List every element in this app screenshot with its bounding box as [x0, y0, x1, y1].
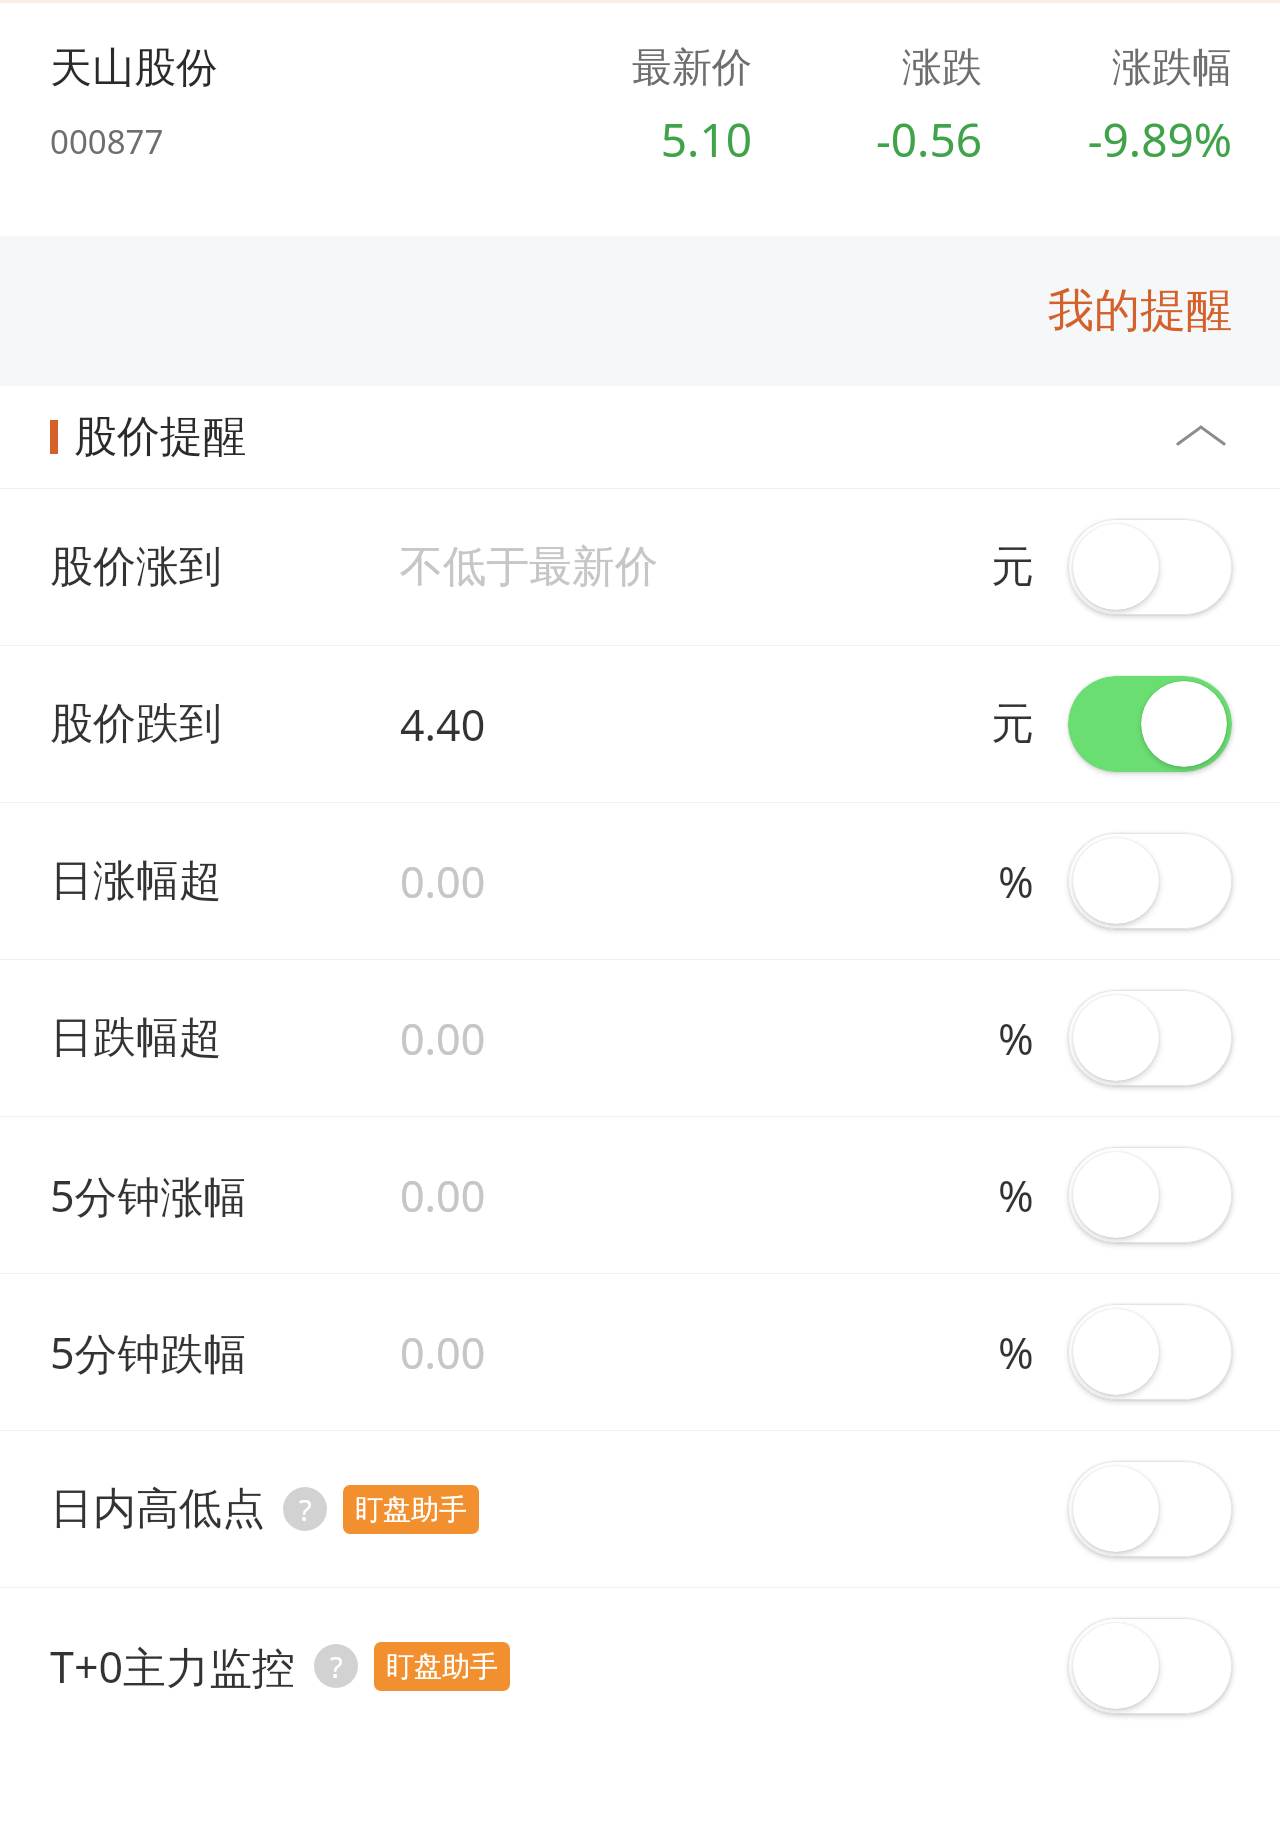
- staticText: -0.56: [875, 108, 982, 171]
- button[interactable]: 日内高低点: [0, 1431, 1280, 1587]
- staticText: %: [998, 1166, 1034, 1225]
- button[interactable]: 股价跌到: [0, 646, 1280, 802]
- staticText: 股价跌到: [50, 697, 400, 751]
- staticText: ?: [299, 1490, 312, 1529]
- button[interactable]: Help: [314, 1644, 358, 1688]
- staticText: 4.40: [400, 695, 991, 754]
- button[interactable]: 股价提醒: [0, 386, 1280, 488]
- staticText: 5分钟涨幅: [50, 1166, 400, 1225]
- button[interactable]: Alert disabled: [1064, 514, 1236, 620]
- button[interactable]: 股价涨到: [0, 489, 1280, 645]
- staticText: 0.00: [400, 1323, 998, 1382]
- staticText: 盯盘助手: [386, 1649, 498, 1684]
- staticText: T+0主力监控: [50, 1637, 296, 1696]
- button[interactable]: Alert enabled: [1064, 671, 1236, 777]
- staticText: 涨跌幅: [1112, 42, 1232, 92]
- staticText: 0.00: [400, 852, 998, 911]
- button[interactable]: Help: [283, 1487, 327, 1531]
- button[interactable]: 我的提醒: [1000, 258, 1280, 364]
- staticText: 我的提醒: [1048, 282, 1232, 340]
- staticText: 日跌幅超: [50, 1011, 400, 1065]
- button[interactable]: 日跌幅超: [0, 960, 1280, 1116]
- staticText: 000877: [50, 119, 164, 164]
- staticText: 不低于最新价: [400, 540, 991, 594]
- staticText: 天山股份: [50, 42, 218, 95]
- button[interactable]: T+0主力监控: [0, 1588, 1280, 1744]
- staticText: 股价涨到: [50, 540, 400, 594]
- staticText: %: [998, 1009, 1034, 1068]
- button[interactable]: 5分钟涨幅: [0, 1117, 1280, 1273]
- staticText: 涨跌: [902, 42, 982, 92]
- staticText: 0.00: [400, 1009, 998, 1068]
- button[interactable]: Alert disabled: [1064, 1142, 1236, 1248]
- staticText: 元: [991, 697, 1034, 751]
- staticText: 0.00: [400, 1166, 998, 1225]
- staticText: %: [998, 1323, 1034, 1382]
- staticText: 5分钟跌幅: [50, 1323, 400, 1382]
- button[interactable]: Alert disabled: [1064, 1299, 1236, 1405]
- staticText: 元: [991, 540, 1034, 594]
- staticText: %: [998, 852, 1034, 911]
- button[interactable]: Alert disabled: [1064, 985, 1236, 1091]
- staticText: 最新价: [632, 42, 752, 92]
- button[interactable]: 日涨幅超: [0, 803, 1280, 959]
- staticText: 日涨幅超: [50, 854, 400, 908]
- staticText: 股价提醒: [74, 410, 246, 464]
- button[interactable]: 5分钟跌幅: [0, 1274, 1280, 1430]
- staticText: -9.89%: [1087, 108, 1232, 171]
- staticText: ?: [330, 1647, 343, 1686]
- button[interactable]: Alert disabled: [1064, 1613, 1236, 1719]
- other: Collapse section: [1172, 408, 1230, 466]
- button[interactable]: Alert disabled: [1064, 1456, 1236, 1562]
- staticText: 盯盘助手: [355, 1492, 467, 1527]
- button[interactable]: Alert disabled: [1064, 828, 1236, 934]
- staticText: 5.10: [660, 108, 752, 171]
- staticText: 日内高低点: [50, 1482, 265, 1536]
